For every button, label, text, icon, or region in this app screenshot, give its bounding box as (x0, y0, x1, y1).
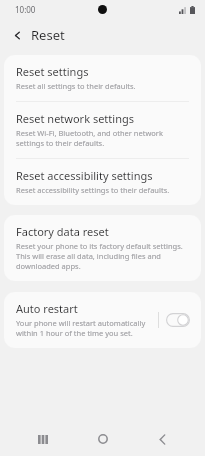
staticText: Reset accessibility settings (16, 168, 153, 183)
button[interactable]: Home (86, 422, 120, 456)
staticText: Auto restart (16, 301, 78, 316)
staticText: Reset Wi-Fi, Bluetooth, and other networ… (16, 128, 187, 148)
staticText: Reset accessibility settings to their de… (16, 185, 170, 195)
staticText: Factory data reset (16, 224, 109, 239)
button[interactable]: Reset accessibility settings (8, 159, 197, 205)
staticText: Reset all settings to their defaults. (16, 81, 136, 91)
staticText: Reset (31, 26, 65, 44)
staticText: Reset network settings (16, 111, 134, 126)
button[interactable]: Factory data reset (8, 215, 197, 281)
button[interactable]: Recent apps (26, 422, 60, 456)
button[interactable]: Back (6, 24, 28, 46)
button[interactable]: Reset settings (8, 55, 197, 101)
staticText: Reset settings (16, 64, 89, 79)
staticText: 10:00 (15, 4, 36, 15)
staticText: Reset your phone to its factory default … (16, 241, 187, 271)
button[interactable]: Back (145, 422, 179, 456)
button[interactable]: Auto restart (166, 313, 190, 327)
button[interactable]: Auto restart (8, 292, 197, 348)
button[interactable]: Reset network settings (8, 102, 197, 158)
staticText: Your phone will restart automatically wi… (16, 318, 152, 338)
